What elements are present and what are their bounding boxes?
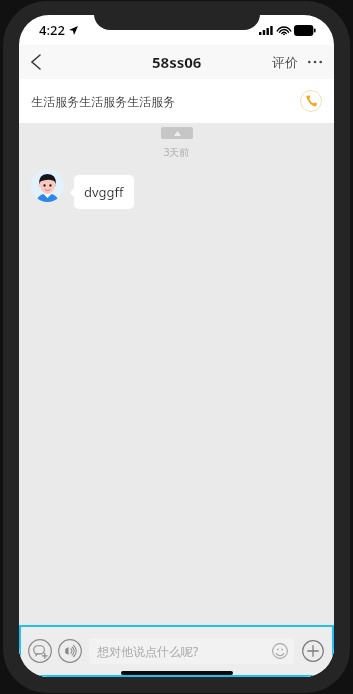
button[interactable]: Avatar — [31, 169, 64, 202]
staticText: 58ss06 — [152, 52, 202, 72]
button[interactable]: More actions — [300, 638, 326, 664]
button[interactable]: More options — [306, 53, 324, 71]
button[interactable]: Voice message — [57, 638, 83, 664]
button[interactable]: 想对他说点什么呢? — [89, 638, 294, 664]
staticText: 想对他说点什么呢? — [97, 643, 199, 659]
button[interactable]: New chat — [27, 638, 53, 664]
button[interactable]: Back — [19, 45, 53, 79]
button[interactable]: Emoji — [271, 642, 289, 660]
staticText: 4:22 — [39, 21, 65, 39]
staticText: 生活服务生活服务生活服务 — [31, 94, 175, 109]
staticText: dvggff — [84, 183, 124, 201]
staticText: 3天前 — [19, 145, 334, 159]
button[interactable]: 评价 — [270, 48, 300, 76]
button[interactable]: dvggff — [74, 175, 134, 209]
button[interactable]: Call — [300, 90, 322, 112]
staticText: 评价 — [272, 54, 298, 70]
